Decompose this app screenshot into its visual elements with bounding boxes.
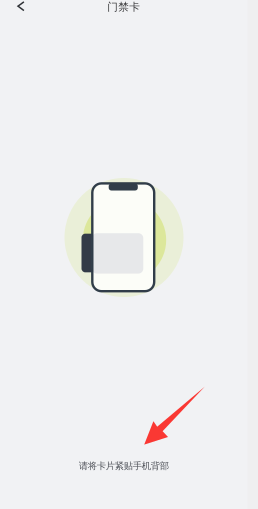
button[interactable]: Back	[5, 0, 37, 18]
staticText: 请将卡片紧贴手机背部	[79, 460, 169, 472]
staticText: 门禁卡	[107, 0, 140, 13]
